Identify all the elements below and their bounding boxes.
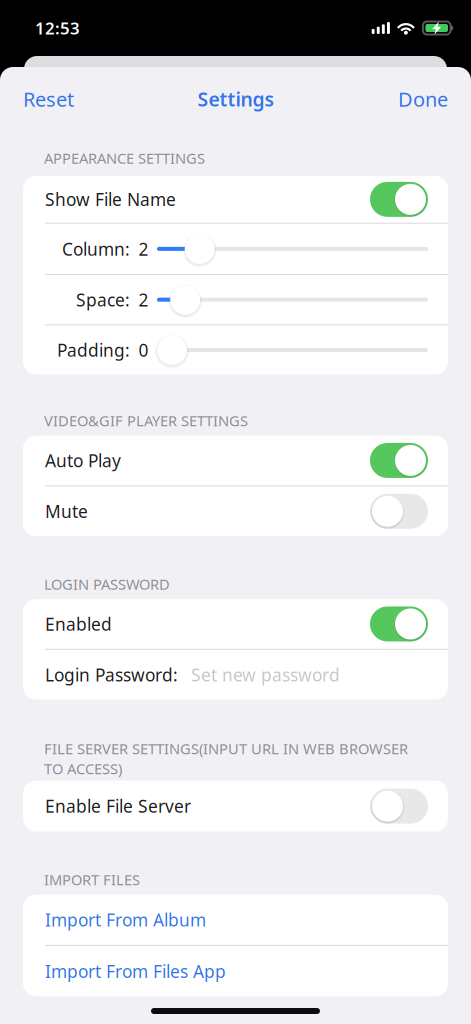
staticText: Padding: bbox=[57, 338, 130, 362]
staticText: Show File Name bbox=[45, 187, 176, 211]
button[interactable]: Enable File Server bbox=[23, 781, 448, 832]
button[interactable]: Column: bbox=[23, 224, 448, 274]
button[interactable]: Import From Files App bbox=[23, 946, 448, 996]
staticText: IMPORT FILES bbox=[44, 870, 140, 890]
staticText: Auto Play bbox=[45, 449, 121, 472]
staticText: Import From Files App bbox=[45, 959, 226, 983]
button[interactable]: Reset bbox=[0, 72, 90, 126]
staticText: Mute bbox=[45, 499, 88, 523]
staticText: 12:53 bbox=[35, 17, 80, 39]
staticText: Login Password: bbox=[45, 663, 178, 686]
staticText: Done bbox=[398, 85, 448, 113]
staticText: LOGIN PASSWORD bbox=[44, 574, 170, 594]
button[interactable]: Mute bbox=[23, 486, 448, 536]
staticText: Space: bbox=[76, 288, 130, 311]
staticText: FILE SERVER SETTINGS(INPUT URL IN WEB BR… bbox=[44, 739, 408, 779]
staticText: 2 bbox=[138, 288, 148, 311]
button[interactable]: Enabled bbox=[23, 599, 448, 649]
button[interactable]: Auto Play bbox=[23, 436, 448, 485]
staticText: 2 bbox=[138, 237, 148, 261]
staticText: 0 bbox=[138, 338, 148, 362]
staticText: Import From Album bbox=[45, 908, 206, 931]
staticText: Reset bbox=[23, 85, 74, 113]
staticText: Set new password bbox=[191, 663, 340, 686]
staticText: Column: bbox=[62, 237, 130, 261]
staticText: Settings bbox=[197, 86, 274, 112]
button[interactable]: Import From Album bbox=[23, 895, 448, 945]
staticText: Enabled bbox=[45, 612, 112, 636]
staticText: APPEARANCE SETTINGS bbox=[44, 148, 205, 168]
button[interactable]: Padding: bbox=[23, 325, 448, 375]
button[interactable]: Done bbox=[382, 72, 471, 126]
staticText: VIDEO&GIF PLAYER SETTINGS bbox=[44, 411, 248, 431]
button[interactable]: Login Password: bbox=[23, 650, 448, 700]
button[interactable]: Space: bbox=[23, 275, 448, 324]
staticText: Enable File Server bbox=[45, 794, 191, 818]
button[interactable]: Show File Name bbox=[23, 176, 448, 223]
